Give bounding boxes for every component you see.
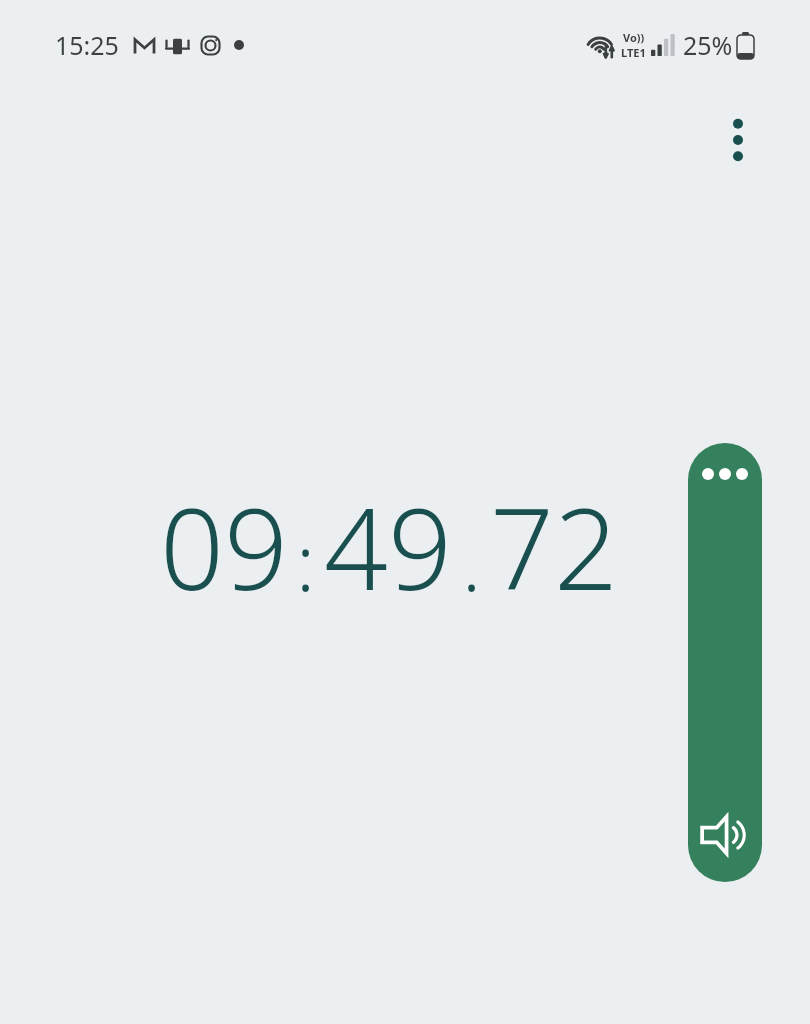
- staticText: 72: [490, 470, 618, 623]
- staticText: .: [462, 508, 482, 614]
- button[interactable]: Volume control: [688, 443, 762, 882]
- staticText: 09: [160, 470, 288, 623]
- staticText: Vo)): [623, 30, 645, 45]
- staticText: 25%: [683, 28, 733, 62]
- button[interactable]: More options: [710, 112, 766, 168]
- staticText: 15:25: [55, 28, 119, 62]
- staticText: LTE1: [621, 45, 646, 60]
- staticText: 49: [324, 470, 452, 623]
- staticText: :: [296, 508, 316, 614]
